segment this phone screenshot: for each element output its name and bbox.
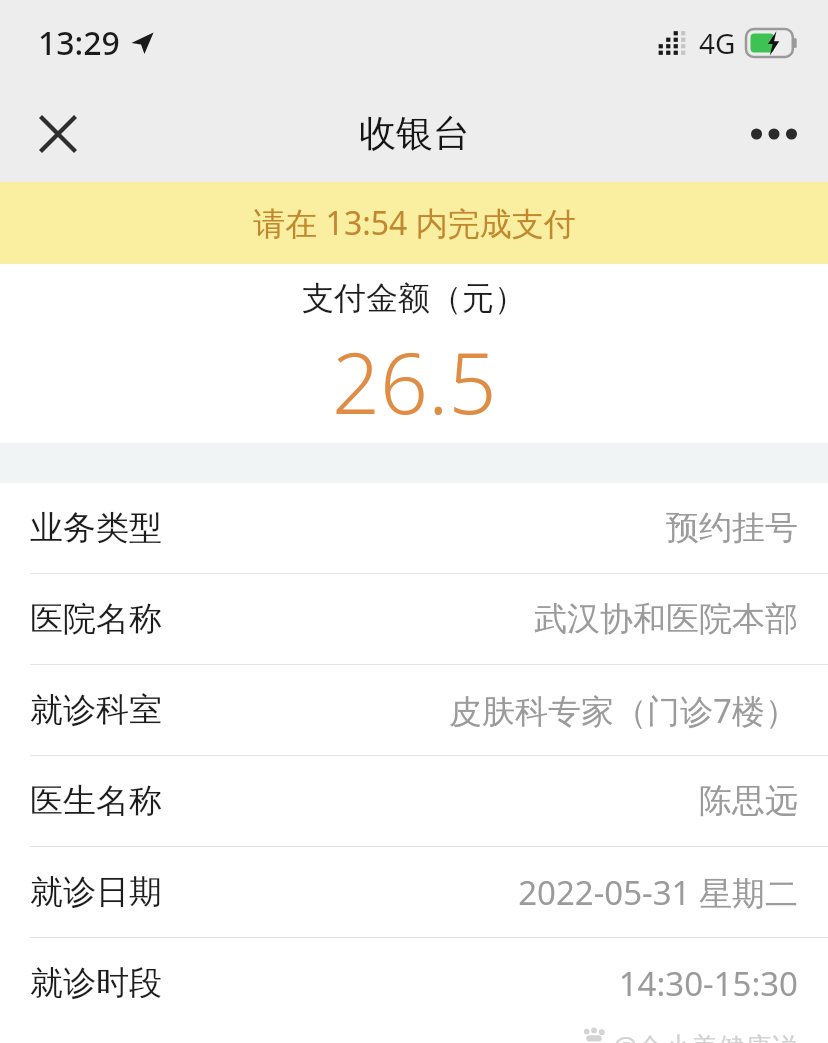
staticText: 业务类型 (30, 507, 162, 549)
staticText: 皮肤科专家（门诊7楼） (449, 688, 798, 733)
staticText: 预约挂号 (666, 507, 798, 549)
button[interactable]: More options (738, 98, 810, 170)
staticText: 13:29 (38, 21, 120, 65)
button[interactable]: 医生名称 (0, 756, 828, 846)
staticText: 陈思远 (699, 780, 798, 822)
staticText: 2022-05-31 星期二 (518, 870, 798, 915)
button[interactable]: 医院名称 (0, 574, 828, 664)
staticText: 14:30-15:30 (618, 961, 798, 1006)
button[interactable]: 业务类型 (0, 483, 828, 573)
staticText: @金小美健康说 (613, 1028, 800, 1043)
staticText: 就诊日期 (30, 871, 162, 913)
staticText: 26.5 (332, 324, 497, 438)
staticText: 医生名称 (30, 780, 162, 822)
staticText: 就诊时段 (30, 962, 162, 1004)
staticText: 就诊科室 (30, 689, 162, 731)
staticText: 4G (699, 24, 736, 62)
button[interactable]: 就诊时段 (0, 938, 828, 1028)
button[interactable]: 就诊科室 (0, 665, 828, 755)
staticText: 请在 13:54 内完成支付 (253, 201, 576, 245)
button[interactable]: Close (22, 98, 94, 170)
staticText: 武汉协和医院本部 (534, 598, 798, 640)
staticText: 医院名称 (30, 598, 162, 640)
staticText: 收银台 (359, 110, 470, 157)
button[interactable]: 就诊日期 (0, 847, 828, 937)
staticText: 支付金额（元） (302, 278, 526, 318)
